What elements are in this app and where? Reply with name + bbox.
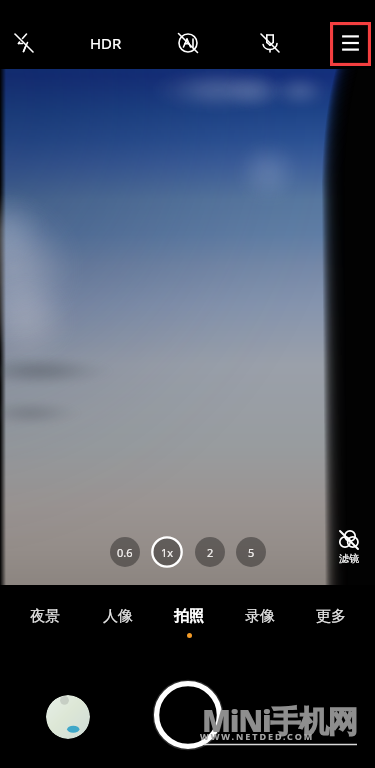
button[interactable]: 人像	[88, 600, 148, 644]
button[interactable]: 拍照	[159, 600, 219, 644]
staticText: 更多	[316, 607, 346, 626]
button[interactable]: 录像	[230, 600, 290, 644]
staticText: WWW.NETDED.COM	[200, 730, 315, 742]
button[interactable]: Shutter	[152, 679, 224, 751]
button[interactable]: Flash off	[2, 21, 46, 65]
button[interactable]: Microphone off	[248, 21, 292, 65]
button[interactable]: AI scene off	[166, 21, 210, 65]
button[interactable]: Gallery	[46, 695, 90, 739]
button[interactable]: Menu	[330, 22, 371, 66]
button[interactable]: 滤镜	[325, 527, 373, 569]
staticText: MiNi手机网	[202, 700, 357, 741]
staticText: 5	[248, 545, 255, 560]
button[interactable]: 1x	[151, 536, 183, 568]
staticText: 2	[207, 545, 214, 560]
button[interactable]: HDR	[84, 27, 128, 59]
button[interactable]: 0.6	[109, 536, 141, 568]
staticText: 1x	[161, 545, 174, 560]
button[interactable]: 夜景	[15, 600, 75, 644]
staticText: 0.6	[117, 545, 133, 560]
button[interactable]: 5	[235, 536, 267, 568]
staticText: 拍照	[174, 607, 204, 626]
button[interactable]: 更多	[301, 600, 361, 644]
staticText: 滤镜	[339, 552, 359, 565]
staticText: HDR	[90, 33, 122, 53]
button[interactable]: 2	[194, 536, 226, 568]
staticText: 人像	[103, 607, 133, 626]
staticText: 夜景	[30, 607, 60, 626]
staticText: 录像	[245, 607, 275, 626]
